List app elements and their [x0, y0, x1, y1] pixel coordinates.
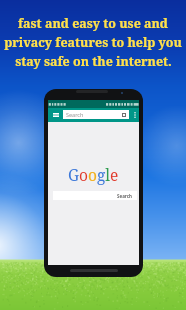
staticText: Search	[117, 193, 133, 199]
staticText: privacy features to help you	[4, 34, 182, 51]
staticText: Search	[66, 111, 84, 118]
staticText: fast and easy to use and	[18, 15, 168, 32]
staticText: Google	[68, 164, 119, 185]
button[interactable]: Menu	[50, 108, 61, 122]
button[interactable]: More options	[131, 108, 139, 122]
button[interactable]: Search	[63, 110, 129, 119]
staticText: stay safe on the internet.	[15, 53, 172, 70]
button[interactable]: Search	[53, 191, 137, 200]
